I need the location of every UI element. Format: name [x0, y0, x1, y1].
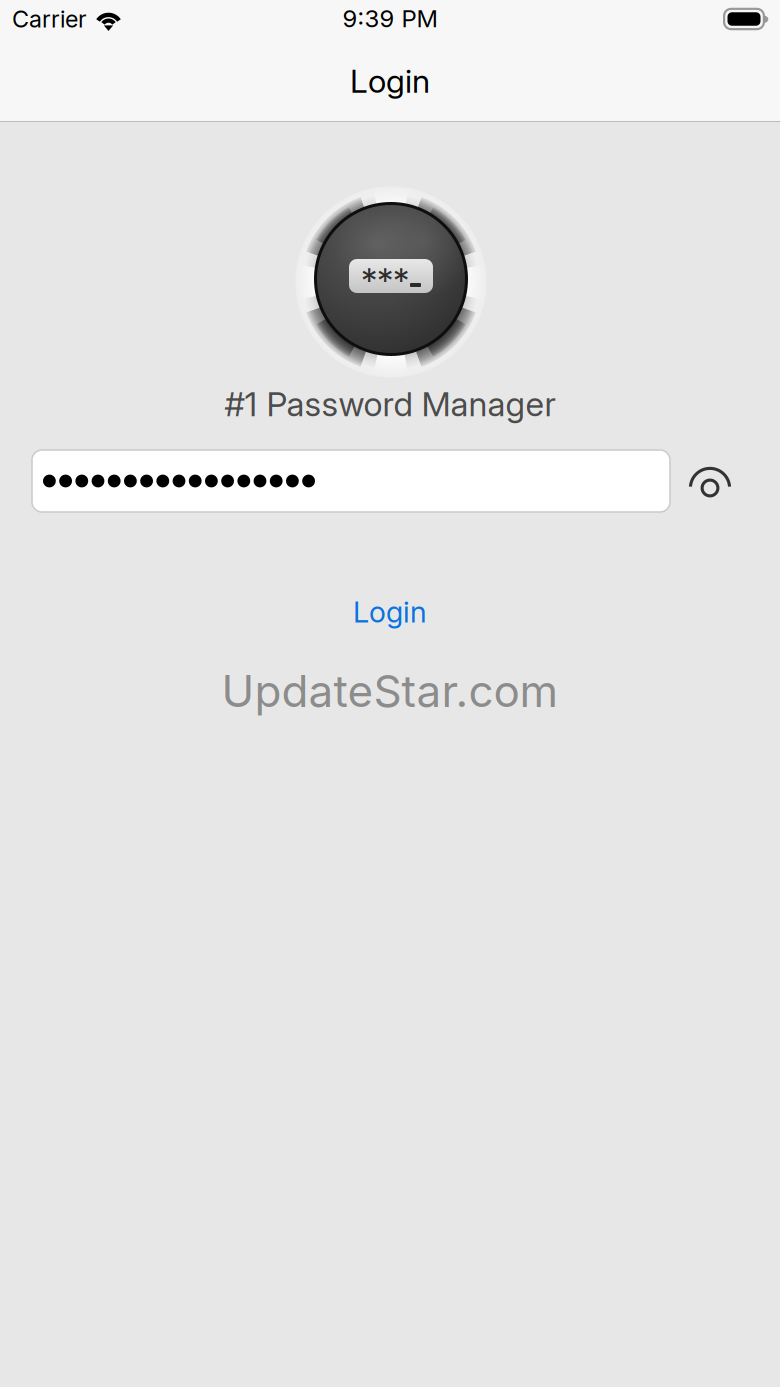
- button[interactable]: Show password: [679, 453, 741, 515]
- staticText: 9:39 PM: [342, 4, 437, 33]
- staticText: Carrier: [12, 5, 87, 33]
- staticText: Login: [350, 62, 430, 100]
- button[interactable]: Login: [240, 586, 540, 638]
- staticText: UpdateStar.com: [221, 664, 558, 718]
- staticText: Login: [353, 594, 427, 630]
- staticText: ***: [361, 259, 409, 300]
- staticText: #1 Password Manager: [224, 384, 555, 424]
